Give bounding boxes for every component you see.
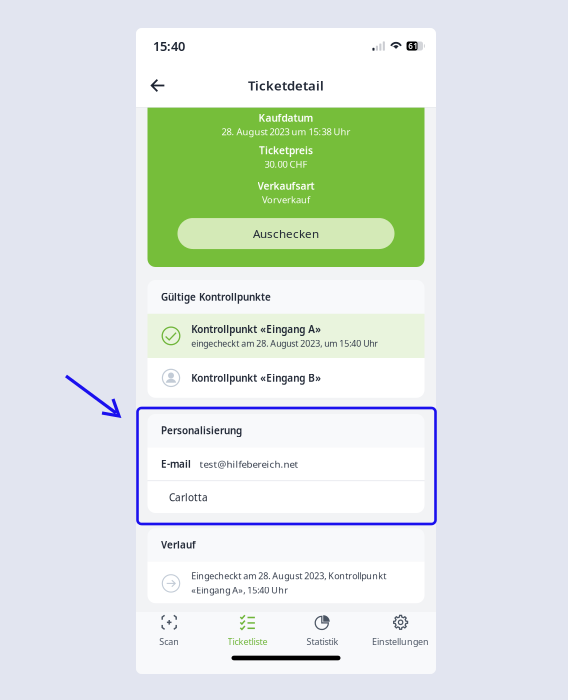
staticText: Kontrollpunkt «Eingang A» [191, 322, 321, 336]
staticText: Kontrollpunkt «Eingang B» [191, 371, 321, 385]
staticText: Carlotta [169, 490, 208, 504]
staticText: Gültige Kontrollpunkte [161, 290, 271, 304]
staticText: Verkaufsart [257, 179, 314, 193]
button[interactable]: Einstellungen [366, 612, 436, 650]
staticText: Statistik [306, 635, 338, 648]
staticText: Ticketliste [228, 635, 268, 648]
button[interactable]: Kontrollpunkt «Eingang B» [147, 358, 424, 398]
button[interactable]: Back [143, 70, 173, 100]
staticText: Auschecken [253, 226, 319, 241]
button[interactable]: Auschecken [177, 218, 394, 249]
staticText: Vorverkauf [262, 193, 310, 206]
staticText: Ticketpreis [259, 143, 313, 157]
staticText: Einstellungen [372, 635, 429, 648]
button[interactable]: Scan [134, 612, 204, 650]
button[interactable]: Ticketliste [213, 612, 283, 650]
staticText: E-mail [161, 457, 191, 471]
staticText: Ticketdetail [248, 77, 324, 94]
staticText: 61 [408, 41, 418, 51]
staticText: Personalisierung [161, 424, 242, 437]
staticText: Eingecheckt am 28. August 2023, Kontroll… [191, 570, 386, 582]
staticText: «Eingang A», 15:40 Uhr [191, 584, 288, 596]
button[interactable]: Statistik [287, 612, 357, 650]
button[interactable]: E-mail [147, 447, 424, 480]
staticText: 30.00 CHF [264, 158, 307, 170]
staticText: 28. August 2023 um 15:38 Uhr [221, 125, 350, 138]
staticText: eingecheckt am 28. August 2023, um 15:40… [191, 337, 378, 349]
button[interactable]: Carlotta [147, 481, 424, 513]
staticText: 15:40 [153, 37, 185, 55]
staticText: Kaufdatum [258, 111, 313, 125]
staticText: Scan [159, 635, 179, 648]
button[interactable]: Kontrollpunkt «Eingang A» [147, 314, 424, 358]
staticText: test@hilfebereich.net [199, 457, 298, 471]
staticText: Verlauf [161, 538, 196, 551]
